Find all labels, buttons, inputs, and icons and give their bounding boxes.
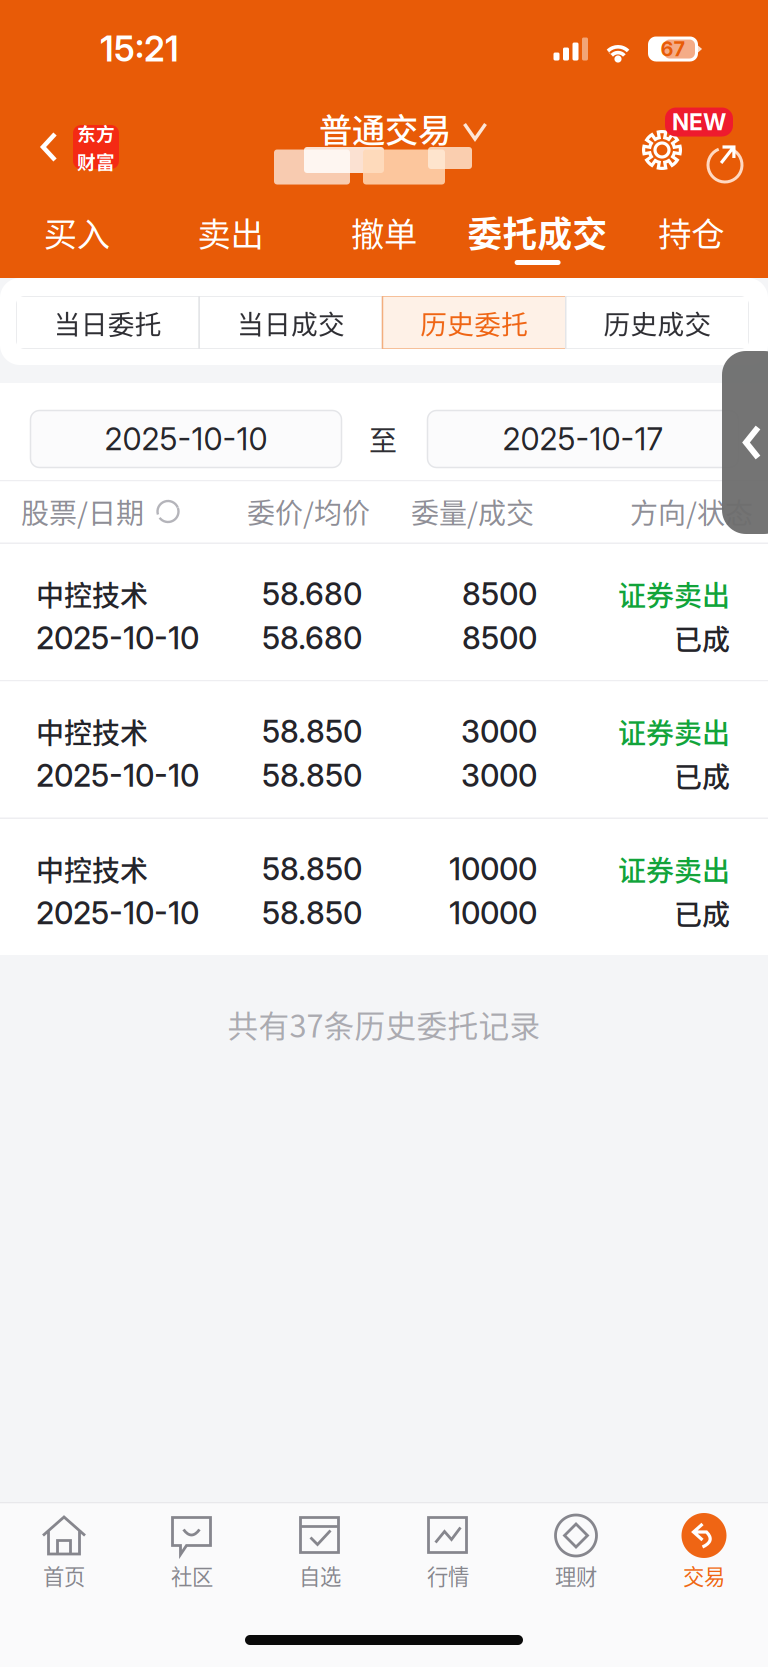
staticText: 中控技术 (36, 711, 148, 752)
staticText: 持仓 (658, 208, 724, 256)
staticText: 当日委托 (54, 303, 162, 342)
staticText: 自选 (299, 1560, 341, 1591)
staticText: 8500 (462, 619, 537, 656)
staticText: 3000 (461, 757, 537, 794)
button[interactable]: 当日成交 (199, 296, 382, 349)
staticText: 15:21 (100, 28, 179, 70)
staticText: 证券卖出 (618, 574, 730, 614)
staticText: 58.680 (262, 619, 362, 656)
button[interactable]: 历史委托 (382, 296, 566, 349)
button[interactable]: Exit (697, 131, 753, 187)
staticText: 10000 (449, 850, 537, 887)
staticText: NEW (672, 108, 726, 136)
staticText: 中控技术 (36, 849, 148, 889)
button[interactable]: 卖出 (154, 209, 307, 269)
staticText: 中控技术 (36, 574, 148, 614)
staticText: 委量/成交 (411, 491, 534, 532)
staticText: 已成 (674, 618, 730, 658)
button[interactable]: 委托成交 (461, 209, 614, 269)
button[interactable]: Settings (640, 128, 683, 171)
staticText: 58.680 (262, 575, 362, 612)
staticText: 证券卖出 (618, 711, 730, 752)
button[interactable]: 东方 (23, 115, 135, 179)
staticText: 首页 (43, 1560, 85, 1591)
button[interactable]: 中控技术 (0, 544, 768, 680)
staticText: 2025-10-10 (36, 619, 199, 656)
staticText: 2025-10-17 (502, 420, 663, 457)
staticText: 买入 (44, 208, 110, 256)
staticText: 行情 (427, 1560, 469, 1591)
button[interactable]: 2025-10-10 (30, 410, 341, 467)
button[interactable]: 历史成交 (566, 296, 749, 349)
staticText: 67 (660, 37, 685, 61)
staticText: 社区 (171, 1560, 213, 1591)
staticText: 2025-10-10 (36, 894, 199, 931)
staticText: 财富 (77, 147, 115, 174)
staticText: 58.850 (262, 757, 362, 794)
button[interactable]: 行情 (384, 1503, 512, 1623)
staticText: 方向/状态 (630, 491, 753, 532)
staticText: 58.850 (262, 894, 362, 931)
button[interactable]: 首页 (0, 1503, 128, 1623)
staticText: 股票/日期 (21, 491, 144, 532)
staticText: 已成 (674, 893, 730, 933)
staticText: 历史成交 (603, 303, 711, 342)
button[interactable]: 撤单 (307, 209, 461, 269)
staticText: 委价/均价 (247, 491, 370, 532)
staticText: 10000 (449, 894, 537, 931)
button[interactable]: 中控技术 (0, 819, 768, 955)
button[interactable]: 普通交易 (311, 100, 495, 156)
staticText: 58.850 (262, 850, 362, 887)
button[interactable]: 当日委托 (16, 296, 199, 349)
button[interactable]: 持仓 (614, 209, 768, 269)
staticText: 8500 (462, 575, 537, 612)
button[interactable]: 交易 (640, 1503, 768, 1623)
staticText: 理财 (555, 1560, 597, 1591)
button[interactable]: Expand panel (722, 351, 768, 534)
staticText: 卖出 (197, 208, 263, 256)
staticText: 撤单 (351, 208, 417, 256)
staticText: 已成 (674, 755, 730, 796)
staticText: 2025-10-10 (104, 420, 267, 457)
button[interactable]: 买入 (0, 209, 154, 269)
button[interactable]: 2025-10-17 (427, 410, 738, 467)
staticText: 3000 (461, 713, 537, 750)
staticText: 委托成交 (468, 207, 608, 257)
staticText: 当日成交 (237, 303, 345, 342)
button[interactable]: 社区 (128, 1503, 256, 1623)
staticText: 历史委托 (420, 303, 528, 342)
staticText: 2025-10-10 (36, 757, 199, 794)
button[interactable]: 自选 (256, 1503, 384, 1623)
staticText: 证券卖出 (618, 849, 730, 889)
staticText: 普通交易 (319, 104, 451, 152)
staticText: 交易 (683, 1560, 725, 1591)
button[interactable]: 理财 (512, 1503, 640, 1623)
staticText: 东方 (77, 119, 115, 146)
staticText: 共有37条历史委托记录 (227, 1002, 540, 1046)
staticText: 至 (369, 419, 397, 459)
button[interactable]: 中控技术 (0, 681, 768, 817)
staticText: 58.850 (262, 713, 362, 750)
